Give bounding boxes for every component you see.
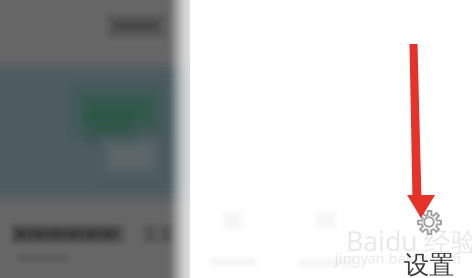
- staticText: Baidu 经验: [346, 223, 472, 259]
- button[interactable]: [186, 203, 280, 278]
- button[interactable]: [279, 203, 373, 278]
- button[interactable]: 设置: [386, 187, 472, 265]
- staticText: 设置: [404, 249, 454, 278]
- staticText: jingyan.baidu.com: [334, 248, 461, 268]
